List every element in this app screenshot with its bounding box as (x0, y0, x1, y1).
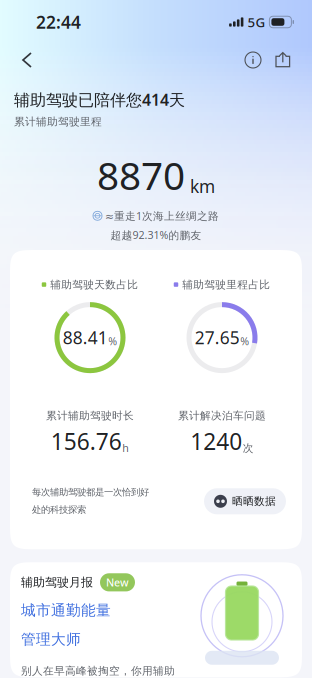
staticText: km (190, 175, 215, 198)
staticText: 辅助驾驶已陪伴您414天 (14, 89, 185, 110)
staticText: 22:44 (36, 10, 81, 33)
staticText: 88.41 (63, 326, 108, 349)
button[interactable]: 晒晒数据 (204, 488, 286, 514)
staticText: 晒晒数据 (232, 495, 276, 508)
staticText: 累计解决泊车问题 (178, 409, 266, 422)
staticText: 1240 (190, 426, 242, 456)
staticText: 每次辅助驾驶都是一次恰到好 (32, 486, 149, 498)
staticText: 156.76 (51, 426, 122, 456)
button[interactable]: 辅助驾驶月报 (10, 562, 302, 677)
staticText: 辅助驾驶里程占比 (182, 278, 270, 291)
staticText: % (108, 334, 117, 348)
staticText: 处的科技探索 (32, 504, 86, 515)
staticText: 辅助驾驶天数占比 (50, 278, 138, 291)
staticText: ≈重走1次海上丝绸之路 (105, 209, 219, 223)
button[interactable]: 返回 (10, 44, 44, 76)
staticText: 累计辅助驾驶时长 (46, 409, 134, 422)
staticText: 27.65 (195, 326, 240, 349)
staticText: 管理大师 (21, 630, 81, 648)
staticText: New (106, 575, 129, 589)
staticText: 累计辅助驾驶里程 (14, 115, 102, 128)
button[interactable]: 说明 (238, 45, 268, 75)
staticText: 超越92.31%的鹏友 (110, 228, 201, 242)
staticText: 5G (247, 13, 265, 31)
button[interactable]: 分享 (268, 45, 298, 75)
staticText: h (122, 441, 129, 455)
staticText: 辅助驾驶月报 (21, 575, 93, 590)
staticText: 8870 (97, 149, 185, 201)
staticText: 城市通勤能量 (21, 601, 111, 619)
staticText: 别人在早高峰被掏空，你用辅助 (21, 664, 175, 678)
staticText: % (240, 334, 249, 348)
staticText: 次 (243, 442, 254, 455)
